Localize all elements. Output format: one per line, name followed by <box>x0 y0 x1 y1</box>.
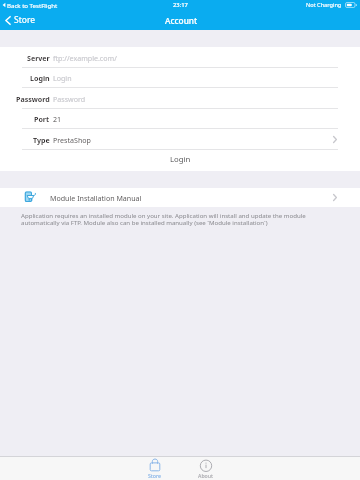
button[interactable]: Type <box>0 129 360 150</box>
staticText: Port <box>34 114 50 124</box>
staticText: Type <box>33 135 50 145</box>
staticText: Password <box>53 94 86 104</box>
button[interactable]: Server <box>0 47 360 68</box>
staticText: Login <box>170 154 191 165</box>
staticText: Back to TestFlight <box>7 1 58 9</box>
button[interactable]: Port <box>0 108 360 129</box>
staticText: 21 <box>53 114 62 124</box>
staticText: Password <box>16 94 50 104</box>
button[interactable]: Login <box>0 149 360 170</box>
staticText: Store <box>14 14 36 26</box>
staticText: About <box>198 472 214 479</box>
staticText: Login <box>30 73 50 83</box>
staticText: Application requires an installed module… <box>21 211 322 226</box>
button[interactable]: Password <box>0 88 360 109</box>
button[interactable]: Module Installation Manual <box>0 188 360 207</box>
button[interactable]: Store <box>130 457 180 480</box>
staticText: PrestaShop <box>53 135 91 145</box>
button[interactable]: Login <box>0 67 360 88</box>
staticText: ftp://example.com/ <box>53 53 117 63</box>
staticText: Not Charging <box>306 1 342 9</box>
button[interactable]: About <box>181 457 231 480</box>
staticText: Login <box>53 73 72 83</box>
staticText: Store <box>148 472 162 479</box>
staticText: Module Installation Manual <box>50 193 142 203</box>
staticText: Account <box>165 15 198 26</box>
button[interactable]: Store <box>5 14 36 26</box>
staticText: 23:17 <box>173 1 188 9</box>
staticText: Server <box>27 53 50 63</box>
